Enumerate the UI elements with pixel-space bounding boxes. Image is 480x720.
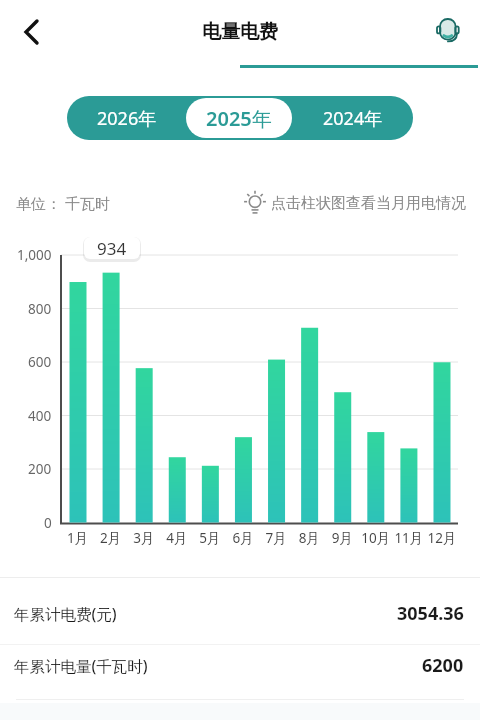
- button[interactable]: 2025年: [186, 98, 292, 138]
- staticText: 电量电费: [202, 20, 278, 44]
- button[interactable]: 点击柱状图查看当月用电情况: [244, 192, 466, 214]
- button[interactable]: 年累计电费(元): [14, 582, 464, 644]
- staticText: 3054.36: [397, 601, 464, 626]
- staticText: 年累计电量(千瓦时): [14, 655, 148, 676]
- staticText: 2026年: [97, 106, 157, 131]
- button[interactable]: 2026年: [67, 96, 186, 140]
- button[interactable]: [8, 10, 52, 54]
- staticText: 2025年: [206, 105, 272, 132]
- button[interactable]: 年累计电量(千瓦时): [14, 637, 464, 693]
- staticText: 6200: [422, 653, 464, 678]
- staticText: 点击柱状图查看当月用电情况: [271, 194, 466, 213]
- button[interactable]: [424, 8, 468, 52]
- staticText: 2024年: [323, 106, 383, 131]
- button[interactable]: 2024年: [292, 96, 413, 140]
- staticText: 单位： 千瓦时: [16, 193, 110, 213]
- staticText: 年累计电费(元): [14, 603, 117, 624]
